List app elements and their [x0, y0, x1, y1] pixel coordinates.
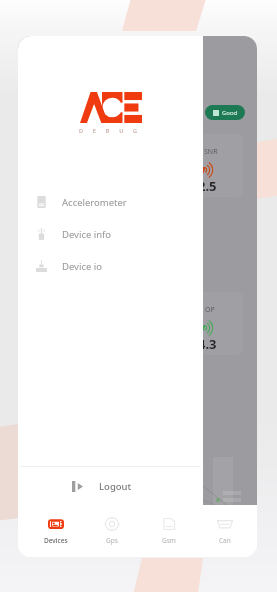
staticText: Logout	[99, 480, 132, 493]
button[interactable]: Logout	[18, 467, 203, 505]
staticText: Gsm	[162, 536, 176, 545]
staticText: D E B U G	[79, 127, 142, 134]
button[interactable]: Can	[200, 518, 250, 557]
staticText: Devices	[44, 536, 68, 545]
staticText: 4.3	[198, 335, 217, 353]
staticText: 2.5	[198, 177, 217, 195]
button[interactable]: Gps	[87, 518, 137, 557]
button[interactable]: Accelerometer	[18, 186, 203, 218]
staticText: Device info	[62, 228, 112, 241]
button[interactable]: Device info	[18, 218, 203, 250]
staticText: OP	[205, 305, 215, 315]
staticText: Device io	[62, 260, 102, 273]
button[interactable]: Gsm	[144, 518, 194, 557]
staticText: SNR	[204, 147, 218, 157]
staticText: Accelerometer	[62, 196, 127, 209]
button[interactable]: Devices	[31, 518, 81, 557]
staticText: Can	[219, 536, 231, 545]
staticText: Gps	[106, 536, 118, 545]
button[interactable]: Device io	[18, 250, 203, 282]
staticText: Good	[222, 109, 238, 117]
